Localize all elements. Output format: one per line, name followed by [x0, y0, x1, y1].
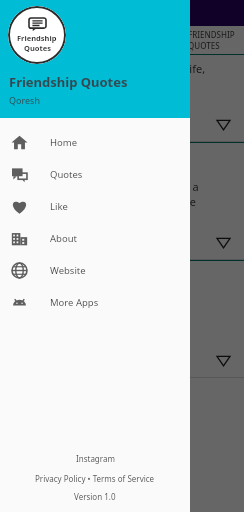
other: Website [11, 262, 28, 279]
staticText: Website [50, 264, 86, 277]
button[interactable]: Like [0, 190, 190, 222]
button[interactable]: About [0, 222, 190, 254]
other: Like [11, 198, 28, 215]
staticText: Qoresh [9, 94, 40, 106]
staticText: Instagram [76, 453, 115, 464]
staticText: About [50, 232, 77, 245]
staticText: Home [50, 136, 78, 149]
staticText: Like [50, 200, 68, 213]
staticText: Quotes [50, 168, 83, 181]
button[interactable]: More Apps [0, 286, 190, 318]
button[interactable]: Share [217, 118, 230, 131]
other: More Apps [11, 294, 28, 311]
button[interactable]: Share [217, 354, 230, 367]
staticText: your life, [160, 61, 206, 76]
staticText: Privacy Policy • Terms of Service [35, 473, 155, 484]
staticText: back love it was a I made [160, 149, 199, 209]
staticText: FRIENDSHIP QUOTES [188, 29, 244, 51]
button[interactable]: Website [0, 254, 190, 286]
button[interactable]: Privacy Policy • Terms of Service [29, 471, 161, 486]
button[interactable]: Quotes [0, 158, 190, 190]
other: Quotes [11, 166, 28, 183]
button[interactable]: Instagram [70, 451, 121, 466]
staticText: Friendship Quotes [9, 73, 128, 91]
other: About [11, 230, 28, 247]
button[interactable]: Share [217, 236, 230, 249]
staticText: Quotes [24, 43, 51, 53]
other: Home [11, 134, 28, 151]
staticText: More Apps [50, 296, 99, 309]
button[interactable]: Home [0, 126, 190, 158]
staticText: Version 1.0 [74, 491, 116, 502]
staticText: Friendship [17, 33, 57, 43]
